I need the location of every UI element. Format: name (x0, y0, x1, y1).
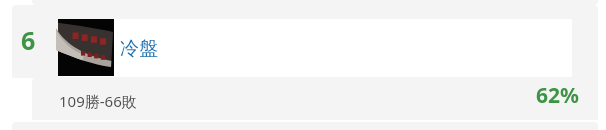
staticText: 109勝-66敗 (59, 91, 137, 111)
button[interactable]: Restaurant photo (58, 19, 114, 76)
button[interactable]: 冷盤 (120, 37, 158, 61)
staticText: 62% (536, 81, 579, 110)
staticText: 6 (21, 23, 36, 57)
